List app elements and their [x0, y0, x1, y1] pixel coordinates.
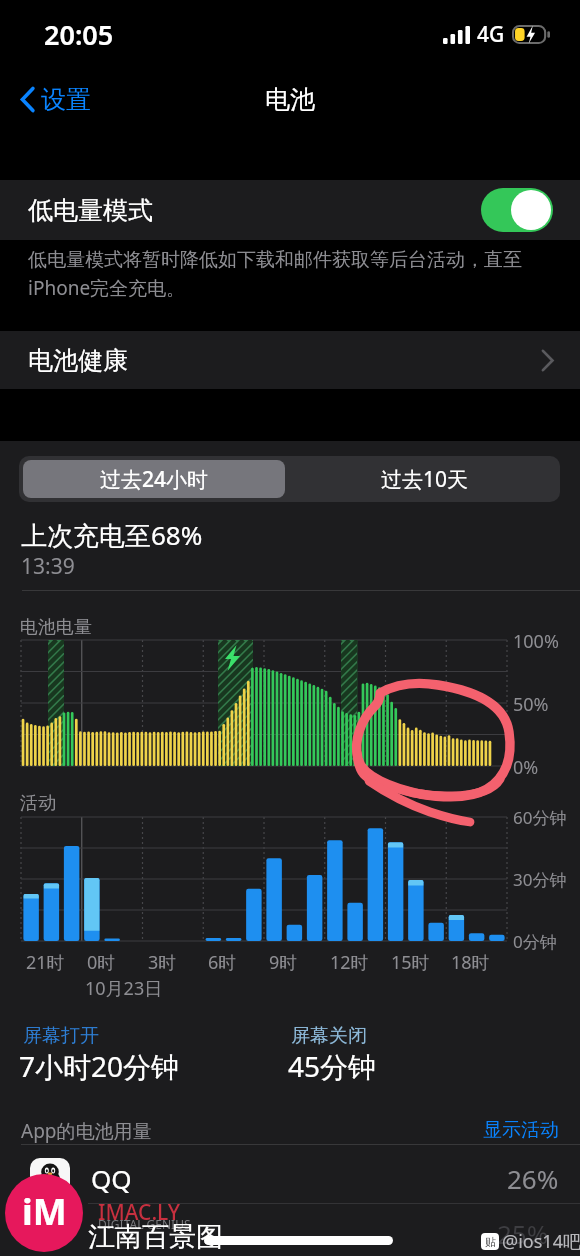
staticText: DIGITAL GENIUS	[98, 1216, 191, 1232]
staticText: 13:39	[21, 552, 75, 581]
staticText: 电池健康	[28, 345, 128, 376]
staticText: 30分钟	[513, 868, 567, 891]
staticText: 100%	[513, 629, 559, 654]
staticText: 7小时20分钟	[19, 1047, 180, 1085]
staticText: 50%	[513, 692, 549, 717]
staticText: 江南百景图	[88, 1220, 223, 1254]
staticText: 设置	[41, 84, 91, 115]
staticText: 电池电量	[20, 616, 92, 639]
staticText: 活动	[20, 792, 56, 815]
staticText: IMAC.LY	[98, 1198, 180, 1227]
button[interactable]: 过去24小时	[23, 460, 285, 498]
staticText: 过去10天	[381, 465, 469, 494]
staticText: 低电量模式将暂时降低如下载和邮件获取等后台活动，直至 iPhone完全充电。	[28, 248, 522, 301]
staticText: 上次充电至68%	[21, 517, 203, 553]
staticText: 25%	[497, 1216, 549, 1251]
staticText: QQ	[91, 1161, 132, 1196]
staticText: 屏幕打开	[23, 1024, 99, 1048]
staticText: 60分钟	[513, 806, 567, 829]
staticText: 9时	[269, 950, 298, 975]
staticText: 贴	[485, 1235, 496, 1249]
staticText: 过去24小时	[100, 465, 209, 494]
button[interactable]: QQ	[0, 1144, 580, 1212]
staticText: 10月23日	[85, 976, 163, 1001]
staticText: 屏幕关闭	[291, 1024, 367, 1048]
button[interactable]: 设置	[14, 78, 97, 121]
staticText: 3时	[148, 950, 177, 975]
staticText: 45分钟	[288, 1047, 377, 1085]
staticText: 18时	[451, 950, 490, 975]
staticText: 26%	[507, 1161, 559, 1196]
button[interactable]: 低电量模式	[0, 180, 580, 240]
button[interactable]: 显示活动	[483, 1118, 559, 1142]
staticText: 4G	[477, 20, 505, 49]
staticText: 电池	[265, 84, 315, 115]
staticText: 0%	[513, 755, 539, 780]
staticText: 20:05	[44, 16, 114, 53]
staticText: App的电池用量	[21, 1118, 152, 1144]
staticText: 0分钟	[513, 930, 557, 953]
staticText: iM	[22, 1187, 67, 1236]
staticText: 0时	[87, 950, 116, 975]
button[interactable]: 电池健康	[0, 331, 580, 389]
staticText: 21时	[26, 950, 65, 975]
staticText: 12时	[330, 950, 369, 975]
staticText: 15时	[391, 950, 430, 975]
button[interactable]: 过去10天	[289, 456, 560, 502]
staticText: 6时	[208, 950, 237, 975]
staticText: 低电量模式	[28, 195, 153, 226]
staticText: @ios14吧	[502, 1229, 580, 1254]
staticText: 显示活动	[483, 1118, 559, 1142]
button[interactable]: 低电量模式 toggle	[481, 188, 553, 232]
